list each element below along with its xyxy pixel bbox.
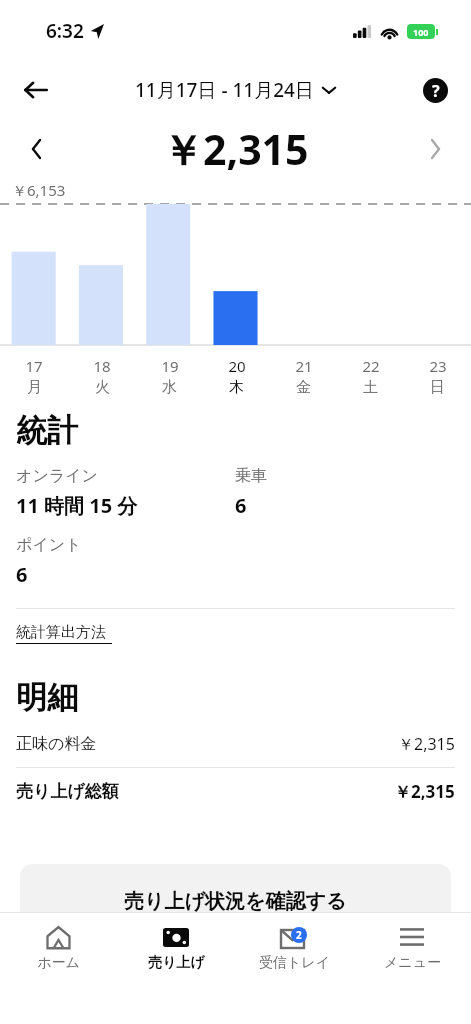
staticText: 土 (363, 378, 378, 397)
staticText: 22 (362, 356, 380, 376)
staticText: 売り上げ総額 (16, 781, 394, 802)
button[interactable]: 22 (337, 356, 404, 397)
button[interactable]: 売り上げ (117, 922, 235, 974)
staticText: ￥2,315 (394, 780, 455, 803)
staticText: 明細 (16, 678, 78, 717)
button[interactable]: 18 (68, 356, 136, 397)
staticText: 売り上げ状況を確認する (124, 889, 347, 912)
button[interactable]: 統計算出方法 (16, 623, 112, 644)
staticText: ホーム (37, 954, 80, 972)
staticText: 6:32 (46, 18, 84, 44)
staticText: 水 (162, 378, 177, 397)
staticText: 日 (430, 378, 445, 397)
staticText: 18 (93, 356, 111, 376)
staticText: 統計 (16, 411, 78, 450)
staticText: 統計算出方法 (16, 623, 106, 642)
staticText: ￥2,315 (162, 121, 309, 177)
staticText: オンライン (16, 466, 98, 486)
staticText: 火 (95, 378, 110, 397)
staticText: ポイント (16, 535, 82, 555)
staticText: 23 (429, 356, 447, 376)
button[interactable]: ホーム (0, 922, 117, 974)
staticText: 17 (25, 356, 43, 376)
button[interactable]: 21 (270, 356, 337, 397)
staticText: 月 (27, 378, 42, 397)
staticText: 19 (161, 356, 179, 376)
staticText: 20 (228, 356, 246, 376)
staticText: 6 (16, 561, 28, 588)
button[interactable]: 17 (0, 356, 68, 397)
staticText: 正味の料金 (16, 734, 398, 754)
button[interactable]: Next week (415, 129, 455, 169)
button[interactable]: Help (415, 70, 455, 110)
staticText: 100 (413, 26, 429, 38)
staticText: 11 時間 15 分 (16, 492, 138, 519)
staticText: ￥6,153 (12, 180, 66, 200)
staticText: メニュー (384, 954, 441, 972)
staticText: 木 (229, 378, 244, 397)
staticText: 乗車 (235, 466, 267, 486)
staticText: 受信トレイ (259, 954, 330, 972)
staticText: ￥2,315 (398, 733, 455, 755)
button[interactable]: 11月17日 - 11月24日 (135, 77, 336, 103)
staticText: ? (432, 80, 440, 102)
staticText: 21 (295, 356, 313, 376)
staticText: 売り上げ (148, 954, 205, 972)
button[interactable]: 23 (404, 356, 471, 397)
button[interactable]: 2 (235, 922, 353, 974)
button[interactable]: 19 (136, 356, 203, 397)
staticText: 6 (235, 492, 247, 519)
staticText: 金 (296, 378, 311, 397)
staticText: 2 (296, 928, 302, 942)
button[interactable]: 売り上げ状況を確認する (20, 864, 451, 912)
button[interactable]: 20 (203, 356, 270, 397)
staticText: 11月17日 - 11月24日 (135, 77, 314, 103)
button[interactable]: Previous week (16, 129, 56, 169)
button[interactable]: Back (14, 68, 58, 112)
button[interactable]: メニュー (353, 922, 471, 974)
